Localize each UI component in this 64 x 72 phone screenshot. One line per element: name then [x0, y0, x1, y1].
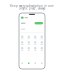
staticText: simple place, always — [19, 7, 45, 10]
staticText: Keep every subscription in one — [10, 4, 54, 8]
